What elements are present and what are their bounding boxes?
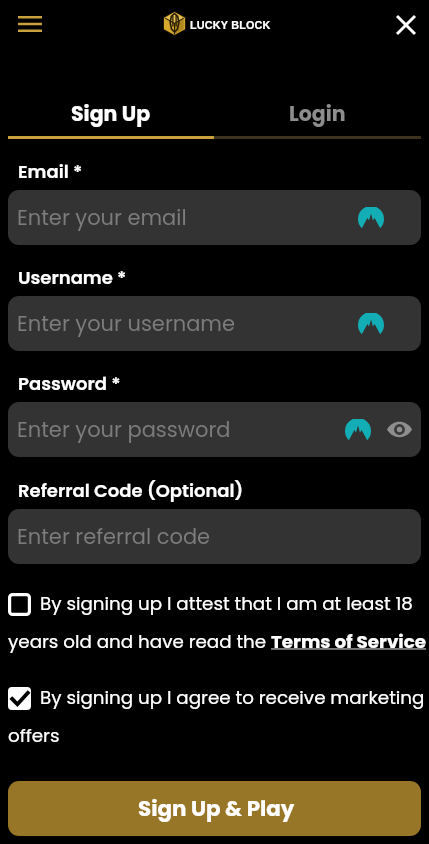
- staticText: Sign Up: [71, 99, 151, 128]
- staticText: Enter referral code: [17, 522, 211, 551]
- staticText: Sign Up & Play: [138, 794, 295, 824]
- staticText: Enter your password: [17, 415, 231, 444]
- button[interactable]: Show password: [387, 419, 412, 440]
- staticText: Password *: [18, 371, 121, 396]
- staticText: By signing up I attest that I am at leas…: [8, 591, 428, 654]
- button[interactable]: Sign Up: [8, 99, 214, 128]
- staticText: Referral Code (Optional): [18, 478, 244, 503]
- staticText: Email *: [18, 159, 83, 184]
- button[interactable]: Login: [214, 99, 421, 128]
- button[interactable]: By signing up I attest that I am at leas…: [8, 591, 428, 654]
- button[interactable]: Enter your email: [8, 190, 421, 245]
- button[interactable]: Enter your password: [8, 402, 421, 457]
- staticText: Login: [289, 99, 346, 128]
- button[interactable]: Close: [385, 3, 427, 45]
- staticText: Enter your username: [17, 309, 236, 338]
- staticText: LUCKY BLOCK: [190, 19, 271, 31]
- button[interactable]: Sign Up & Play: [8, 781, 421, 836]
- staticText: Username *: [18, 265, 127, 290]
- staticText: Enter your email: [17, 203, 187, 232]
- button[interactable]: Menu: [9, 3, 51, 45]
- staticText: By signing up I agree to receive marketi…: [8, 685, 428, 748]
- button[interactable]: By signing up I agree to receive marketi…: [8, 685, 428, 748]
- button[interactable]: Enter referral code: [8, 509, 421, 564]
- button[interactable]: Enter your username: [8, 296, 421, 351]
